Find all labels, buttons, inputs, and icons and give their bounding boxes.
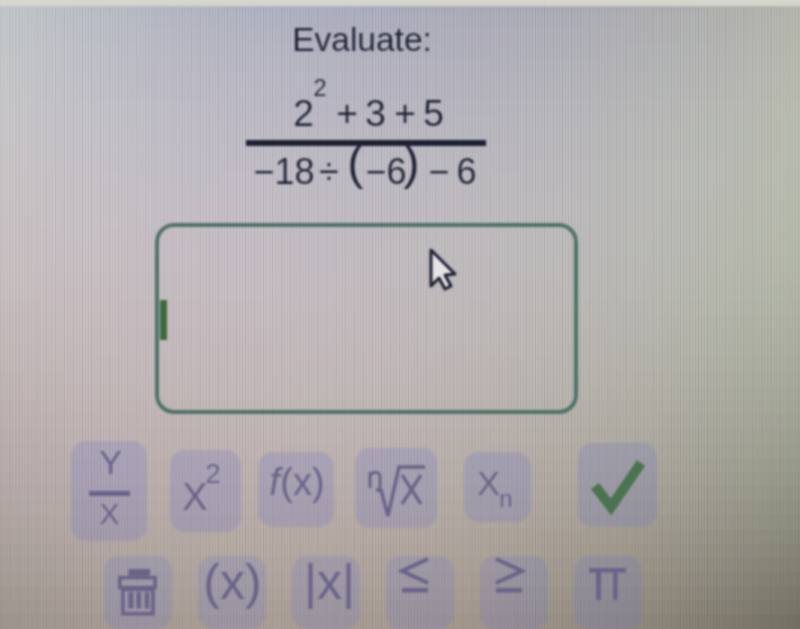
staticText: 2 xyxy=(313,75,327,101)
button[interactable]: Y over X fraction xyxy=(71,441,147,541)
button[interactable]: Pi xyxy=(574,556,642,629)
staticText: − xyxy=(428,151,450,191)
staticText: ) xyxy=(403,135,420,190)
button[interactable]: Parentheses xyxy=(198,556,266,629)
staticText: + xyxy=(336,93,358,134)
staticText: 2 xyxy=(293,93,314,134)
staticText: + xyxy=(394,93,416,134)
staticText: 5 xyxy=(423,93,444,134)
button[interactable]: function of x xyxy=(258,452,334,527)
staticText: 3 xyxy=(365,93,386,134)
staticText: X xyxy=(477,464,500,502)
staticText: f xyxy=(269,461,280,503)
staticText: n xyxy=(499,485,513,512)
button[interactable]: x squared xyxy=(170,450,241,532)
button[interactable]: Absolute value xyxy=(292,556,360,629)
staticText: X xyxy=(99,497,120,531)
button[interactable]: Less than or equal to xyxy=(386,556,454,629)
button[interactable]: X sub n xyxy=(464,452,531,522)
button[interactable]: Delete xyxy=(104,556,172,629)
staticText: −6 xyxy=(365,151,407,191)
staticText: 2 xyxy=(205,459,221,489)
staticText: ÷ xyxy=(319,151,339,191)
button[interactable]: nth root of x xyxy=(355,448,437,528)
staticText: X xyxy=(182,476,208,518)
button[interactable]: Greater than or equal to xyxy=(480,556,548,629)
button[interactable]: Submit answer xyxy=(578,443,657,527)
staticText: (x) xyxy=(203,556,262,610)
button[interactable]: Answer input field xyxy=(155,223,578,414)
staticText: Y xyxy=(99,443,122,481)
staticText: |x| xyxy=(304,556,355,610)
staticText: 6 xyxy=(456,151,477,191)
staticText: (x) xyxy=(280,461,325,503)
staticText: −18 xyxy=(253,151,315,191)
staticText: Evaluate: xyxy=(292,21,432,58)
staticText: ( xyxy=(347,135,364,190)
